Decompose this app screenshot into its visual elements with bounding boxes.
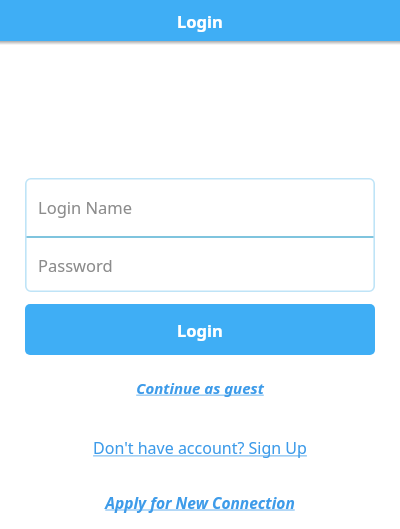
button[interactable]: Password <box>25 238 375 292</box>
button[interactable]: Login <box>25 304 375 355</box>
button[interactable]: Don't have account? Sign Up <box>87 435 313 461</box>
staticText: Apply for New Connection <box>105 492 295 513</box>
button[interactable]: Apply for New Connection <box>99 490 301 515</box>
staticText: Login Name <box>38 196 133 218</box>
staticText: Don't have account? Sign Up <box>93 437 307 459</box>
staticText: Continue as guest <box>136 378 264 398</box>
button[interactable]: Continue as guest <box>130 376 270 400</box>
staticText: Login <box>177 319 223 341</box>
button[interactable]: Login Name <box>25 178 375 236</box>
staticText: Password <box>38 254 113 276</box>
staticText: Login <box>177 10 223 32</box>
